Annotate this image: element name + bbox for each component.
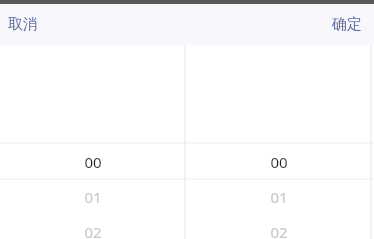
staticText: 01: [270, 187, 288, 207]
staticText: 00: [84, 152, 102, 172]
staticText: 取消: [8, 15, 38, 34]
staticText: 00: [270, 152, 288, 172]
button[interactable]: Number wheel: [186, 45, 371, 239]
button[interactable]: 确定: [320, 4, 374, 45]
staticText: 确定: [332, 15, 362, 34]
staticText: 01: [84, 187, 102, 207]
button[interactable]: 取消: [0, 4, 50, 45]
staticText: 02: [270, 222, 288, 239]
staticText: 02: [84, 222, 102, 239]
button[interactable]: Number wheel: [0, 45, 185, 239]
